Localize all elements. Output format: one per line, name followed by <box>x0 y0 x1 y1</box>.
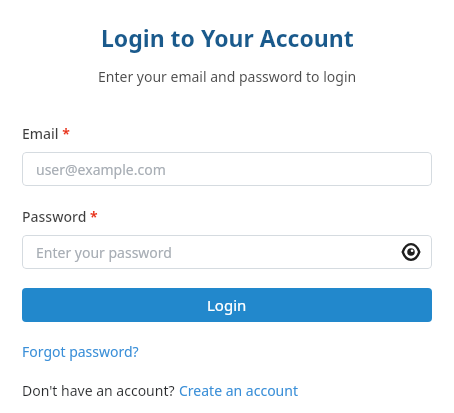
button[interactable]: Login <box>22 288 432 322</box>
staticText: Email * <box>22 124 70 143</box>
button[interactable]: Email input <box>22 152 432 186</box>
staticText: Forgot password? <box>22 342 139 361</box>
button[interactable]: Create an account <box>179 379 298 402</box>
staticText: Enter your email and password to login <box>98 67 357 86</box>
staticText: Don't have an account? <box>22 381 179 400</box>
staticText: Enter your password <box>36 243 400 262</box>
staticText: Create an account <box>179 381 298 400</box>
staticText: Login to Your Account <box>101 22 354 53</box>
button[interactable]: Show password <box>400 241 422 263</box>
staticText: Password * <box>22 207 98 226</box>
staticText: Login <box>207 295 247 315</box>
button[interactable]: Password input <box>22 235 432 269</box>
staticText: user@example.com <box>36 160 422 179</box>
button[interactable]: Forgot password? <box>22 340 139 363</box>
